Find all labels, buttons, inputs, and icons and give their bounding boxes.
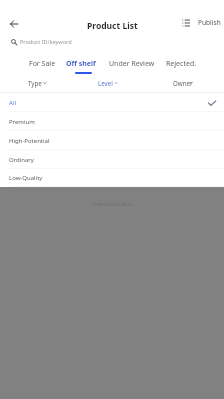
- button[interactable]: High-Potential: [0, 131, 224, 150]
- staticText: Under Review: [109, 59, 155, 69]
- staticText: Product ID/keyword: [20, 38, 72, 45]
- button[interactable]: Premium: [0, 112, 224, 131]
- staticText: Owner: [173, 79, 193, 87]
- staticText: For Sale: [29, 59, 56, 69]
- staticText: Ordinary: [9, 156, 34, 164]
- button[interactable]: For Sale: [16, 48, 68, 75]
- staticText: All: [9, 99, 16, 107]
- staticText: Off shelf: [66, 59, 96, 69]
- staticText: Premium: [9, 118, 35, 126]
- staticText: Product List: [87, 20, 138, 32]
- staticText: Publish: [198, 18, 221, 27]
- staticText: High-Potential: [9, 137, 50, 145]
- button[interactable]: Publish: [178, 14, 222, 32]
- button[interactable]: All: [0, 93, 224, 112]
- button[interactable]: Under Review: [106, 48, 158, 75]
- staticText: Rejected.: [166, 59, 197, 69]
- button[interactable]: Off shelf: [55, 48, 107, 75]
- button[interactable]: Level: [92, 75, 120, 93]
- button[interactable]: Low-Quality: [0, 169, 224, 187]
- button[interactable]: Type: [22, 75, 49, 93]
- staticText: Level: [98, 79, 113, 87]
- button[interactable]: Ordinary: [0, 150, 224, 169]
- staticText: Low-Quality: [9, 174, 43, 182]
- staticText: There is no data: [92, 200, 133, 207]
- button[interactable]: Rejected.: [155, 48, 207, 75]
- button[interactable]: Owner: [167, 75, 195, 93]
- staticText: Type: [28, 79, 42, 87]
- button[interactable]: Back: [4, 14, 24, 34]
